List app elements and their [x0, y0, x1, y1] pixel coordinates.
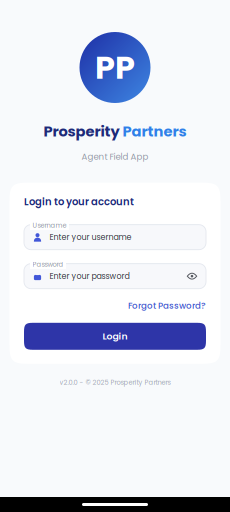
staticText: Agent Field App — [81, 150, 148, 163]
button[interactable]: Forgot Password? — [24, 289, 206, 323]
staticText: Login — [102, 330, 127, 343]
staticText: Prosperity — [43, 121, 119, 141]
staticText: Forgot Password? — [128, 300, 206, 312]
staticText: Enter your username — [49, 232, 131, 243]
staticText: Partners — [122, 121, 186, 141]
staticText: Enter your password — [49, 271, 129, 282]
staticText: v2.0.0 - © 2025 Prosperity Partners — [59, 378, 170, 387]
staticText: PP — [95, 45, 135, 90]
button[interactable]: Login — [24, 323, 206, 350]
staticText: Password — [32, 260, 63, 269]
staticText: Username — [32, 221, 66, 230]
staticText: Login to your account — [24, 195, 134, 209]
